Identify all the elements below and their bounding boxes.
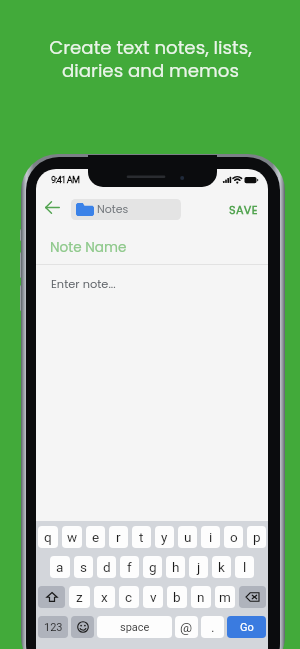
button[interactable]: Shift — [38, 586, 65, 608]
button[interactable]: Notes — [71, 199, 181, 220]
staticText: a — [56, 559, 64, 575]
button[interactable]: a — [50, 556, 70, 578]
staticText: t — [139, 529, 144, 545]
staticText: i — [209, 529, 213, 545]
staticText: f — [127, 559, 132, 575]
staticText: Note Name — [50, 238, 127, 257]
staticText: b — [173, 589, 181, 605]
staticText: k — [218, 559, 225, 575]
staticText: @ — [180, 619, 193, 635]
button[interactable]: v — [143, 586, 163, 608]
button[interactable]: @ — [175, 616, 198, 638]
button[interactable]: p — [247, 526, 266, 548]
staticText: d — [103, 559, 111, 575]
staticText: m — [219, 589, 231, 605]
staticText: x — [101, 589, 108, 605]
button[interactable]: 123 — [38, 616, 68, 638]
button[interactable]: c — [119, 586, 139, 608]
button[interactable]: w — [62, 526, 82, 548]
staticText: n — [197, 589, 205, 605]
button[interactable]: . — [201, 616, 224, 638]
button[interactable]: t — [132, 526, 151, 548]
staticText: SAVE — [229, 202, 258, 218]
staticText: s — [80, 559, 87, 575]
button[interactable]: f — [120, 556, 139, 578]
button[interactable]: l — [235, 556, 254, 578]
staticText: j — [197, 559, 201, 575]
button[interactable]: x — [94, 586, 115, 608]
button[interactable]: Back — [43, 198, 61, 216]
staticText: z — [76, 589, 83, 605]
button[interactable]: y — [155, 526, 174, 548]
button[interactable]: b — [167, 586, 187, 608]
button[interactable]: Go — [227, 616, 266, 638]
staticText: y — [161, 529, 168, 545]
button[interactable]: u — [178, 526, 197, 548]
button[interactable]: g — [143, 556, 162, 578]
staticText: q — [44, 529, 52, 545]
button[interactable]: Emoji — [71, 616, 94, 638]
staticText: g — [149, 559, 157, 575]
button[interactable]: d — [97, 556, 116, 578]
staticText: Notes — [97, 201, 129, 216]
staticText: w — [67, 529, 78, 545]
staticText: Go — [240, 621, 254, 634]
staticText: 9:41 AM — [51, 174, 80, 185]
button[interactable]: j — [189, 556, 208, 578]
button[interactable]: s — [74, 556, 93, 578]
staticText: Enter note... — [51, 276, 116, 292]
button[interactable]: k — [212, 556, 231, 578]
staticText: o — [230, 529, 238, 545]
staticText: e — [92, 529, 100, 545]
staticText: Create text notes, lists, diaries and me… — [49, 35, 252, 84]
button[interactable]: q — [38, 526, 58, 548]
button[interactable]: Backspace — [239, 586, 266, 608]
staticText: 123 — [44, 621, 63, 634]
staticText: space — [120, 621, 150, 634]
button[interactable]: space — [97, 616, 172, 638]
staticText: . — [211, 619, 215, 635]
button[interactable]: o — [224, 526, 243, 548]
staticText: u — [184, 529, 192, 545]
staticText: h — [172, 559, 180, 575]
button[interactable]: Note Name — [50, 228, 268, 266]
button[interactable]: Enter note... — [51, 265, 268, 303]
button[interactable]: SAVE — [225, 199, 262, 221]
staticText: v — [150, 589, 157, 605]
button[interactable]: r — [109, 526, 128, 548]
button[interactable]: h — [166, 556, 185, 578]
staticText: c — [125, 589, 133, 605]
button[interactable]: n — [191, 586, 211, 608]
staticText: l — [243, 559, 247, 575]
button[interactable]: m — [215, 586, 235, 608]
button[interactable]: i — [201, 526, 220, 548]
staticText: p — [253, 529, 261, 545]
button[interactable]: e — [86, 526, 105, 548]
staticText: r — [116, 529, 121, 545]
button[interactable]: z — [69, 586, 90, 608]
